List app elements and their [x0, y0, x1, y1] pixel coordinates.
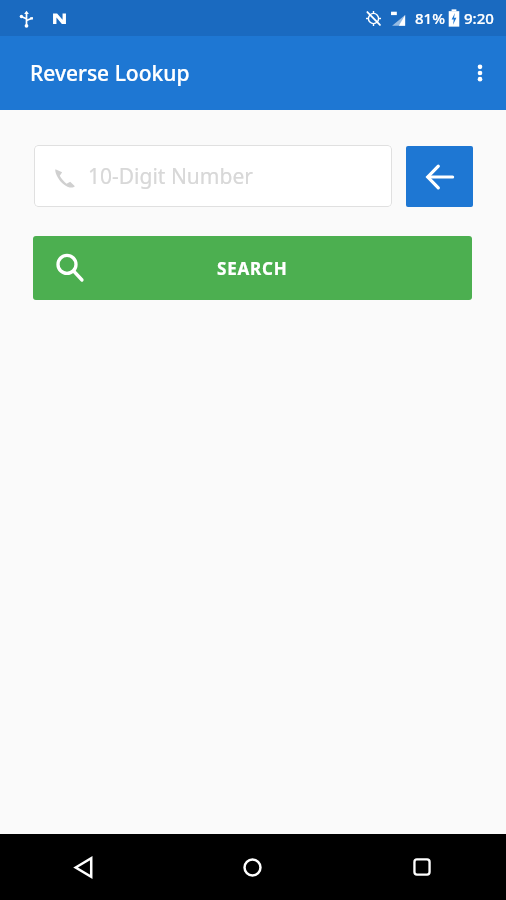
staticText: 81%: [415, 8, 445, 28]
button[interactable]: More options: [454, 47, 506, 99]
button[interactable]: Home: [168, 834, 337, 900]
button[interactable]: 10-Digit Number: [34, 145, 392, 207]
button[interactable]: Back: [406, 146, 473, 207]
staticText: 10-Digit Number: [88, 162, 253, 191]
staticText: 9:20: [464, 8, 494, 28]
staticText: SEARCH: [217, 257, 288, 280]
button[interactable]: Recents: [337, 834, 506, 900]
button[interactable]: SEARCH: [33, 236, 472, 300]
staticText: Reverse Lookup: [30, 59, 190, 88]
button[interactable]: Back: [0, 834, 168, 900]
